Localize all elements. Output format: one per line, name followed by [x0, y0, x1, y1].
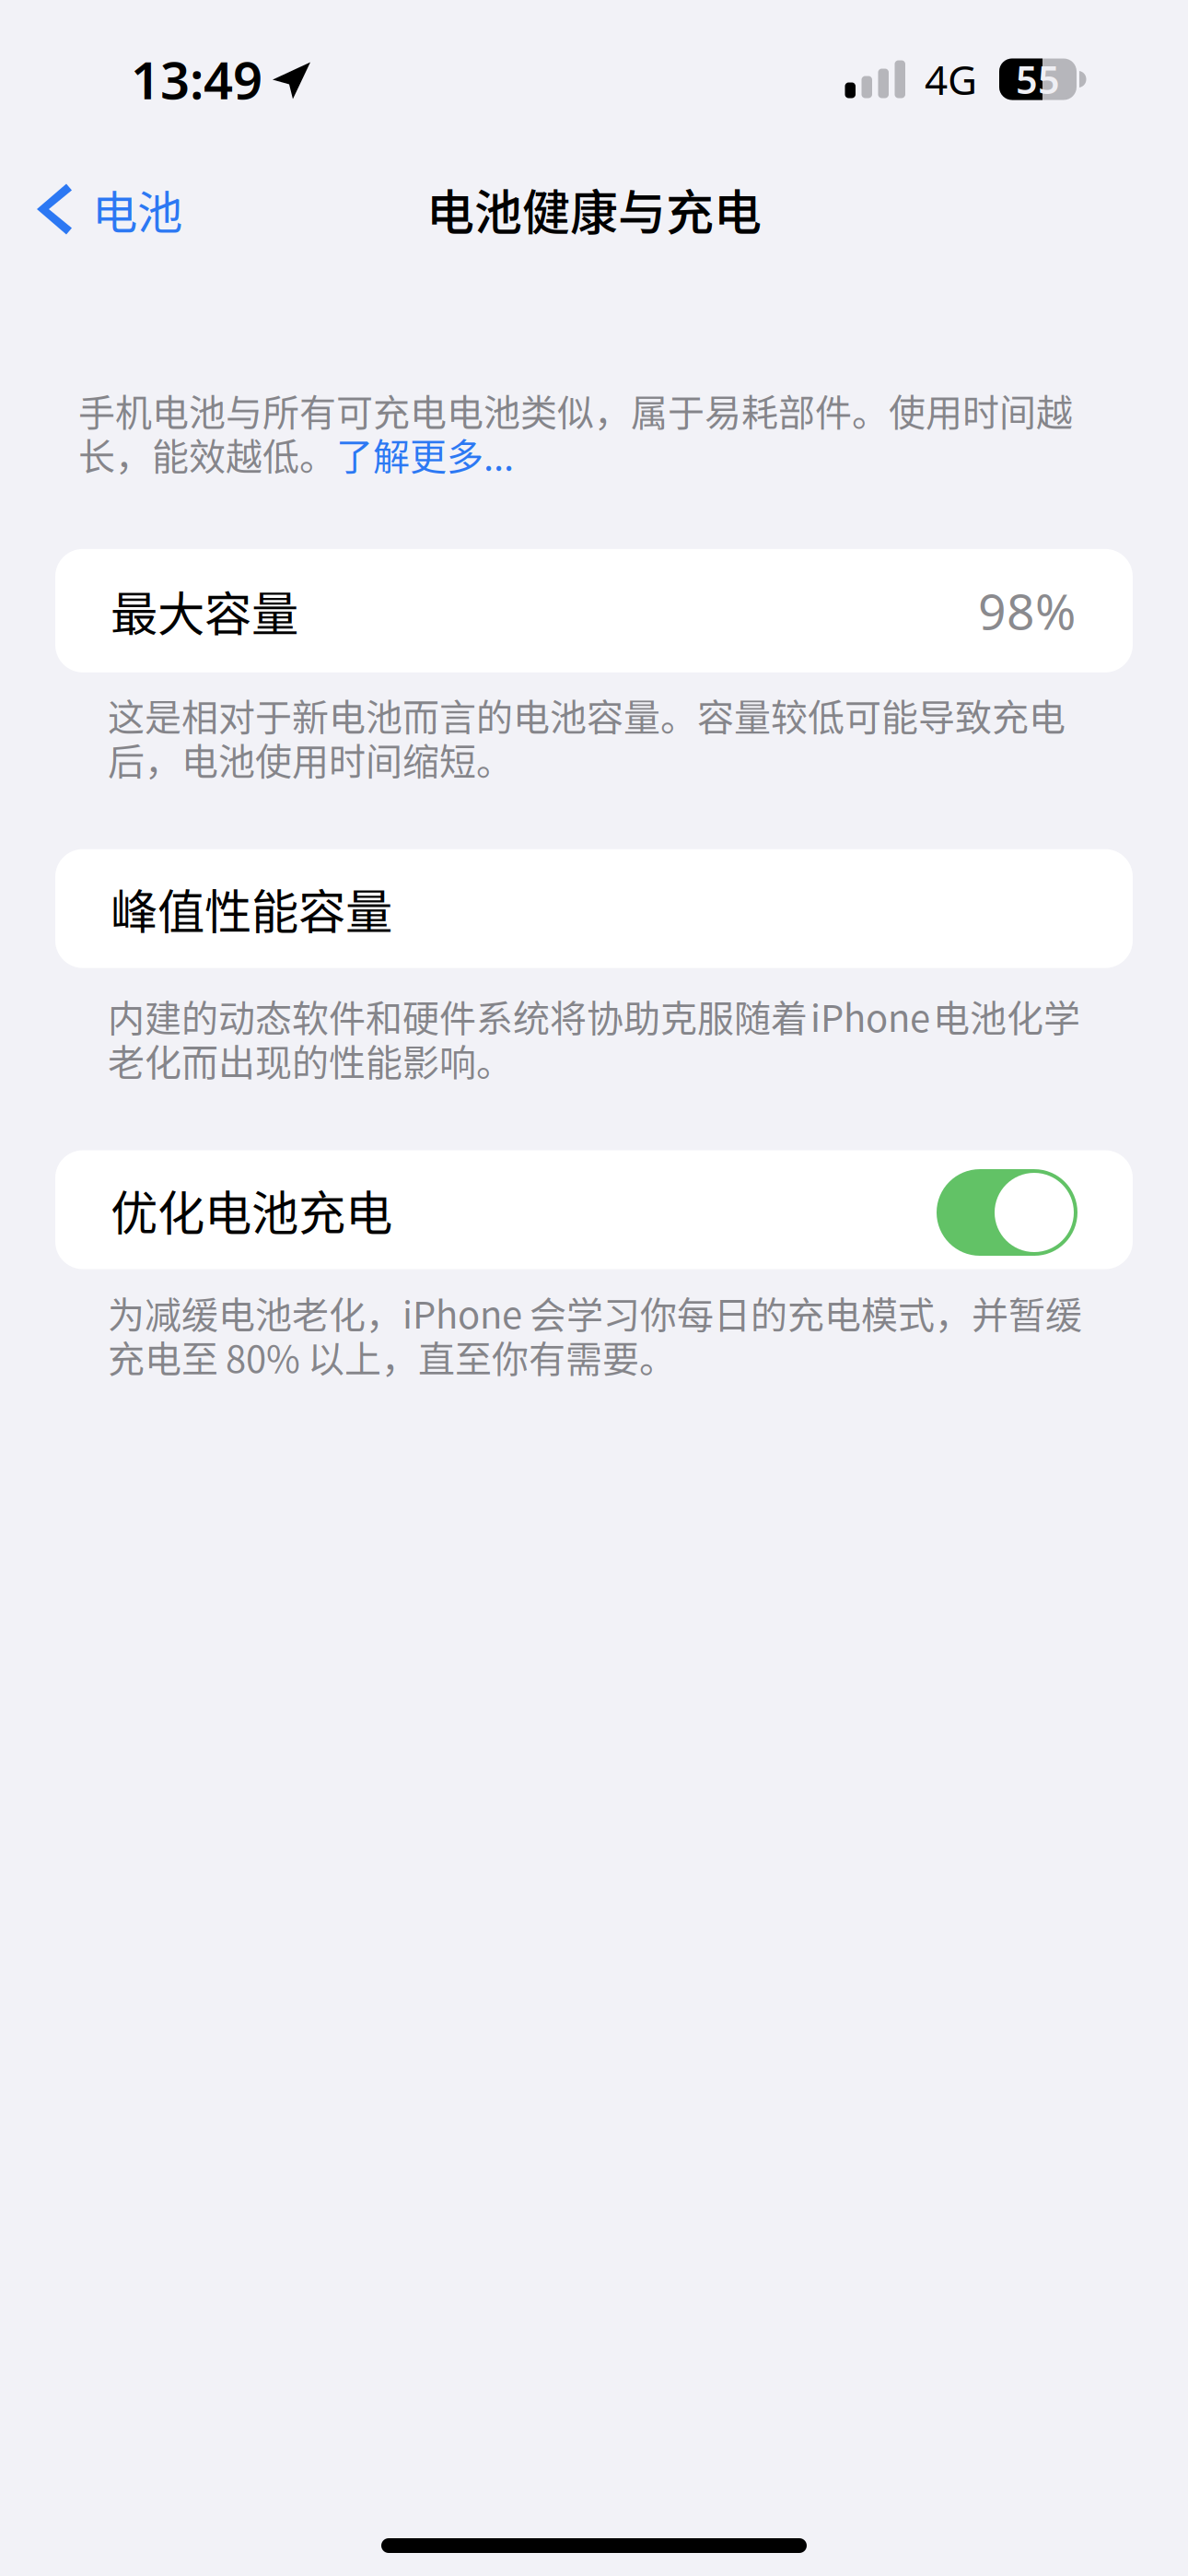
- staticText: 为减缓电池老化，iPhone 会学习你每日的充电模式，并暂缓 充电至 80% 以…: [108, 1286, 1082, 1383]
- staticText: 4G: [925, 52, 977, 106]
- staticText: 98%: [978, 578, 1076, 643]
- staticText: 这是相对于新电池而言的电池容量。容量较低可能导致充电 后，电池使用时间缩短。: [108, 688, 1066, 786]
- button[interactable]: 了解更多: [297, 440, 513, 481]
- button[interactable]: 电池: [0, 163, 208, 255]
- staticText: 内建的动态软件和硬件系统将协助克服随着 iPhone 电池化学 老化而出现的性能…: [108, 989, 1080, 1087]
- button[interactable]: 最大容量: [55, 549, 1133, 672]
- staticText: 55: [1016, 54, 1060, 105]
- staticText: 最大容量: [111, 576, 298, 645]
- staticText: 峰值性能容量: [111, 874, 392, 943]
- staticText: 电池: [92, 176, 182, 242]
- button[interactable]: 优化电池充电: [55, 1150, 1133, 1269]
- staticText: 手机电池与所有可充电电池类似，属于易耗部件。使用时间越 长，能效越低。了解更多.…: [78, 383, 1073, 481]
- staticText: 优化电池充电: [111, 1176, 392, 1244]
- staticText: 电池健康与充电: [426, 174, 762, 244]
- button[interactable]: 峰值性能容量: [55, 849, 1133, 968]
- staticText: 13:49: [131, 45, 262, 114]
